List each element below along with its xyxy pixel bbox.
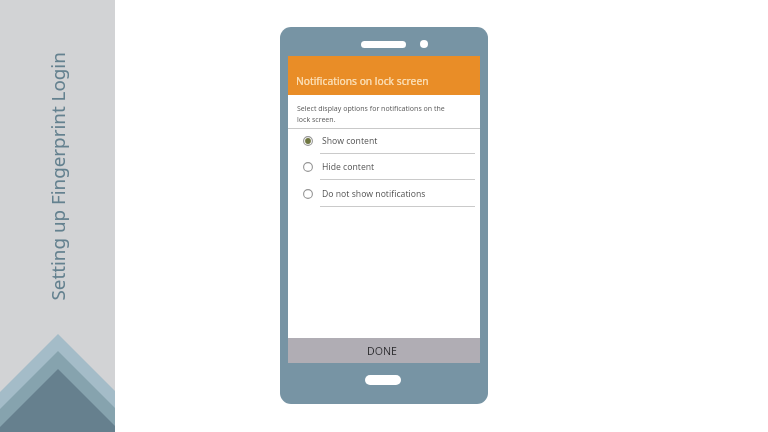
staticText: Select display options for notifications… (297, 104, 457, 124)
staticText: Setting up Fingerprint Login (44, 51, 70, 300)
button[interactable]: Show content (288, 129, 480, 154)
staticText: Hide content (322, 161, 375, 173)
staticText: Notifications on lock screen (296, 74, 429, 88)
button[interactable]: Do not show notifications (288, 182, 480, 207)
staticText: Do not show notifications (322, 188, 426, 200)
staticText: Show content (322, 135, 378, 147)
button[interactable]: DONE (288, 338, 480, 363)
button[interactable]: Hide content (288, 155, 480, 180)
staticText: DONE (367, 344, 397, 358)
